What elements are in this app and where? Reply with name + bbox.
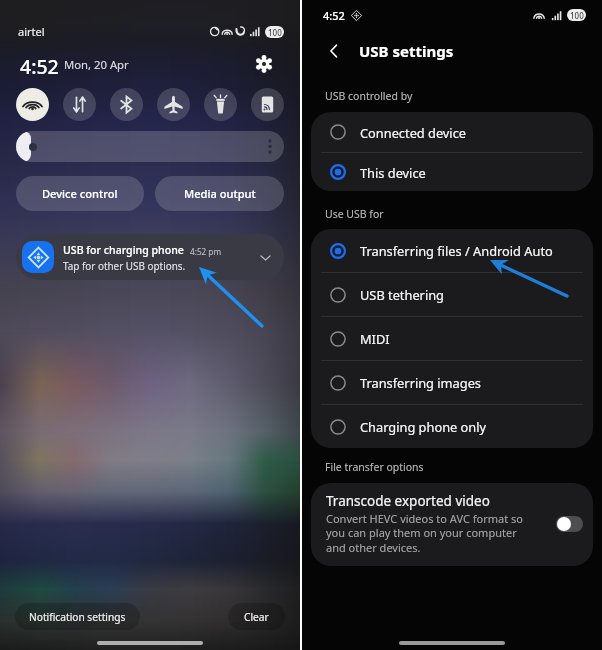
staticText: MIDI: [360, 330, 390, 347]
staticText: USB settings: [359, 41, 454, 61]
staticText: Transferring images: [360, 374, 481, 391]
button[interactable]: Transferring files / Android Auto: [311, 229, 593, 272]
button[interactable]: Settings: [252, 53, 276, 75]
staticText: 100: [268, 27, 282, 38]
button[interactable]: Notification settings: [15, 603, 140, 630]
staticText: Notification settings: [29, 610, 126, 624]
staticText: USB tethering: [360, 286, 444, 303]
staticText: Media output: [184, 186, 256, 201]
staticText: USB controlled by: [325, 89, 413, 103]
button[interactable]: Transcode exported video: [311, 483, 593, 566]
button[interactable]: Back: [323, 40, 345, 62]
button[interactable]: Connected device: [311, 112, 593, 152]
staticText: 4:52: [323, 8, 345, 23]
staticText: Transcode exported video: [326, 492, 490, 510]
staticText: 100: [570, 10, 584, 21]
staticText: Convert HEVC videos to AVC format so you…: [326, 511, 538, 556]
button[interactable]: Bluetooth: [110, 88, 143, 121]
button[interactable]: Charging phone only: [311, 405, 593, 448]
button[interactable]: Mobile data: [63, 88, 96, 121]
staticText: Transferring files / Android Auto: [360, 242, 553, 259]
button[interactable]: Device control: [16, 176, 144, 211]
staticText: Mon, 20 Apr: [64, 57, 129, 72]
button[interactable]: USB tethering: [311, 273, 593, 316]
button[interactable]: Screen cast: [251, 88, 284, 121]
button[interactable]: Brightness: [16, 131, 284, 162]
staticText: File transfer options: [325, 460, 424, 474]
staticText: Connected device: [360, 124, 467, 141]
staticText: Device control: [42, 186, 118, 201]
button[interactable]: Transferring images: [311, 361, 593, 404]
button[interactable]: Clear: [228, 603, 285, 630]
staticText: 4:52: [20, 53, 59, 75]
button[interactable]: Flashlight: [204, 88, 237, 121]
staticText: Tap for other USB options.: [63, 259, 186, 272]
button[interactable]: Media output: [155, 176, 284, 211]
button[interactable]: MIDI: [311, 317, 593, 360]
button[interactable]: Wi-Fi: [16, 88, 49, 121]
staticText: This device: [360, 164, 426, 181]
staticText: Use USB for: [325, 207, 384, 221]
staticText: USB for charging phone: [63, 243, 184, 257]
button[interactable]: Transcode exported video toggle: [556, 516, 583, 532]
button[interactable]: This device: [311, 153, 593, 191]
button[interactable]: Airplane mode: [157, 88, 190, 121]
staticText: Charging phone only: [360, 418, 487, 435]
staticText: airtel: [18, 24, 45, 39]
staticText: 4:52 pm: [190, 246, 222, 257]
button[interactable]: USB for charging phone: [16, 234, 284, 280]
staticText: Clear: [244, 610, 269, 624]
